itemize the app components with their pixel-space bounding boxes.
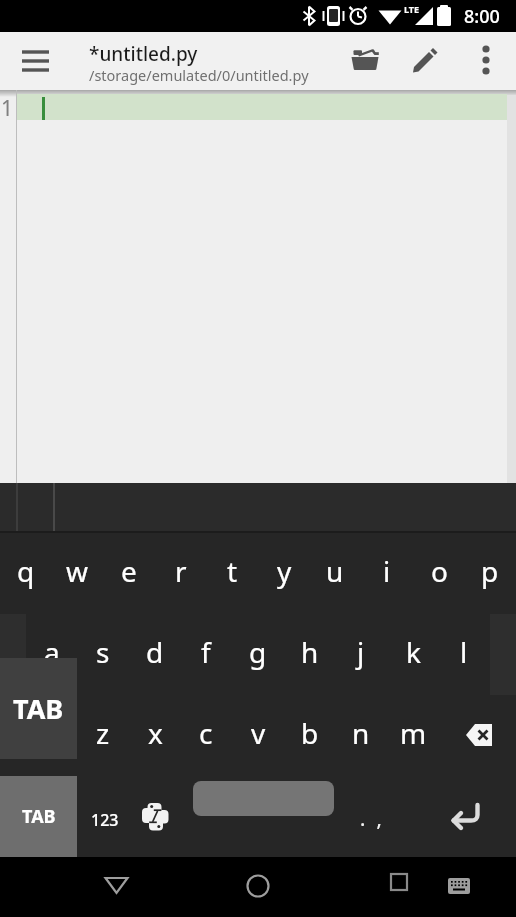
button[interactable]: y xyxy=(258,531,310,611)
staticText: m xyxy=(400,714,427,752)
staticText: z xyxy=(96,714,110,752)
button[interactable]: g xyxy=(232,612,284,692)
staticText: p xyxy=(481,552,499,590)
staticText: . , xyxy=(360,805,385,832)
staticText: c xyxy=(199,714,213,752)
button[interactable]: b xyxy=(284,693,336,773)
button[interactable]: . , xyxy=(346,778,398,859)
button[interactable]: 123 xyxy=(79,779,131,860)
staticText: y xyxy=(277,552,292,590)
staticText: w xyxy=(66,552,89,590)
button[interactable]: s xyxy=(77,612,129,692)
button[interactable]: u xyxy=(309,531,361,611)
staticText: n xyxy=(352,714,370,752)
button[interactable]: d xyxy=(129,612,181,692)
button[interactable]: x xyxy=(129,693,181,773)
staticText: TAB xyxy=(22,804,56,829)
button[interactable] xyxy=(454,695,506,776)
staticText: i xyxy=(383,552,391,590)
staticText: v xyxy=(251,714,266,752)
button[interactable] xyxy=(440,776,492,857)
staticText: a xyxy=(44,633,60,671)
button[interactable] xyxy=(193,781,334,816)
staticText: 1 xyxy=(1,94,14,120)
button[interactable]: n xyxy=(335,693,387,773)
staticText: /storage/emulated/0/untitled.py xyxy=(89,65,309,85)
button[interactable]: f xyxy=(180,612,232,692)
button[interactable]: r xyxy=(155,531,207,611)
staticText: q xyxy=(17,552,35,590)
button[interactable]: t xyxy=(206,531,258,611)
staticText: 123 xyxy=(91,809,119,831)
button[interactable]: a xyxy=(26,612,78,692)
staticText: LTE xyxy=(404,3,420,15)
staticText: d xyxy=(146,633,164,671)
button[interactable]: z xyxy=(77,693,129,773)
staticText: o xyxy=(431,552,448,590)
staticText: h xyxy=(301,633,319,671)
button[interactable] xyxy=(12,39,58,83)
staticText: b xyxy=(301,714,319,752)
button[interactable]: k xyxy=(387,612,439,692)
staticText: 8:00 xyxy=(464,4,500,29)
staticText: TAB xyxy=(13,690,64,727)
staticText: x xyxy=(148,714,163,752)
staticText: f xyxy=(201,633,211,671)
staticText: g xyxy=(249,633,267,671)
button[interactable] xyxy=(402,37,448,85)
button[interactable]: v xyxy=(232,693,284,773)
staticText: e xyxy=(121,552,137,590)
button[interactable]: m xyxy=(387,693,439,773)
button[interactable] xyxy=(342,37,388,85)
staticText: k xyxy=(406,633,421,671)
staticText: t xyxy=(227,552,238,590)
staticText: j xyxy=(357,633,365,671)
staticText: r xyxy=(175,552,187,590)
button[interactable]: j xyxy=(335,612,387,692)
staticText: l xyxy=(460,633,468,671)
button[interactable] xyxy=(91,861,141,911)
staticText: s xyxy=(96,633,110,671)
button[interactable]: l xyxy=(438,612,490,692)
staticText: *untitled.py xyxy=(89,41,198,67)
button[interactable]: i xyxy=(361,531,413,611)
button[interactable]: e xyxy=(103,531,155,611)
button[interactable] xyxy=(374,861,424,911)
button[interactable] xyxy=(434,861,484,911)
button[interactable] xyxy=(233,861,283,911)
button[interactable] xyxy=(463,37,509,85)
staticText: u xyxy=(326,552,344,590)
button[interactable]: p xyxy=(464,531,516,611)
button[interactable]: c xyxy=(180,693,232,773)
button[interactable]: h xyxy=(284,612,336,692)
button[interactable]: TAB xyxy=(0,776,77,857)
button[interactable] xyxy=(130,776,182,857)
button[interactable]: q xyxy=(0,531,52,611)
button[interactable]: w xyxy=(51,531,103,611)
button[interactable]: o xyxy=(413,531,465,611)
